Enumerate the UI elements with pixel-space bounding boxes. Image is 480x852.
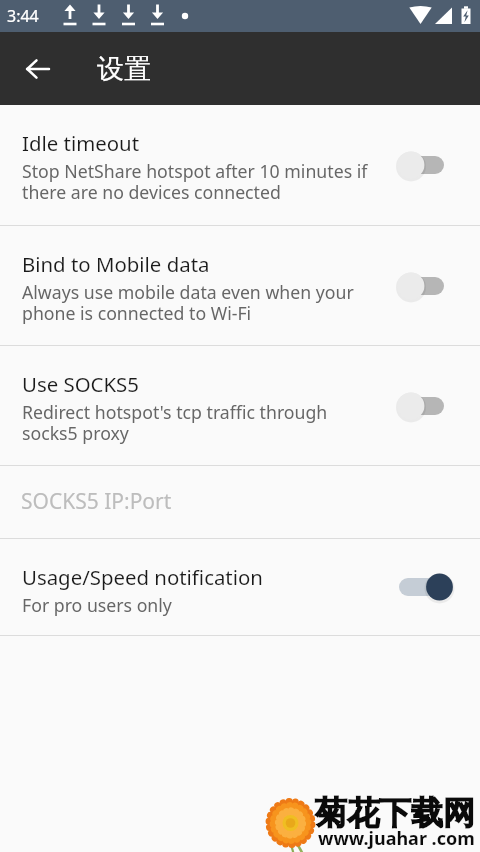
staticText: For pro users only (22, 593, 172, 617)
staticText: 设置 (97, 52, 151, 86)
button[interactable]: Bind to Mobile data (0, 226, 480, 345)
button[interactable]: Toggle (399, 390, 457, 422)
staticText: 3:44 (7, 5, 39, 27)
staticText: Bind to Mobile data (22, 250, 210, 278)
staticText: www.juahar .com (318, 826, 475, 851)
staticText: Use SOCKS5 (22, 370, 139, 398)
staticText: Redirect hotspot's tcp traffic through s… (22, 400, 328, 445)
button[interactable]: Back (0, 32, 76, 105)
staticText: SOCKS5 IP:Port (21, 487, 172, 516)
staticText: Always use mobile data even when your ph… (22, 280, 354, 325)
staticText: Stop NetShare hotspot after 10 minutes i… (22, 159, 368, 204)
staticText: Idle timeout (22, 129, 140, 157)
staticText: 菊花下载网 (315, 793, 475, 833)
button[interactable]: SOCKS5 IP:Port (0, 466, 480, 538)
button[interactable]: Use SOCKS5 (0, 346, 480, 465)
button[interactable]: Toggle (399, 270, 457, 302)
button[interactable]: Toggle (399, 149, 457, 181)
button[interactable]: Idle timeout (0, 105, 480, 225)
button[interactable]: Toggle (399, 571, 457, 603)
button[interactable]: Usage/Speed notification (0, 539, 480, 635)
staticText: Usage/Speed notification (22, 563, 263, 591)
